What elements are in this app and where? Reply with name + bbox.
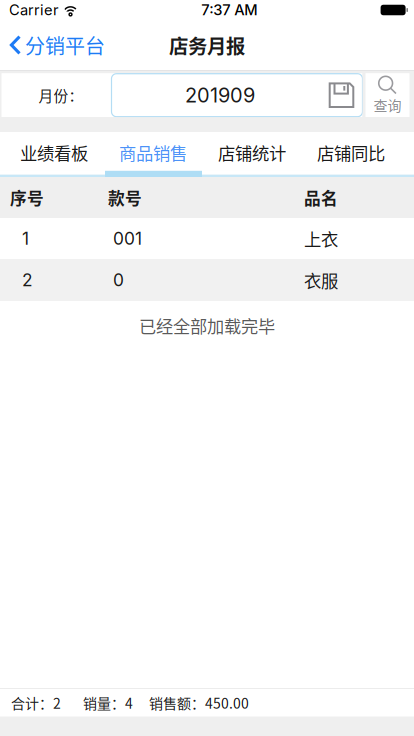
staticText: 7:37 AM <box>201 1 257 19</box>
button[interactable]: 商品销售 <box>103 132 202 171</box>
button[interactable]: Save <box>328 74 362 116</box>
staticText: 销量：4 <box>83 693 133 713</box>
staticText: 合计：2 <box>11 693 61 713</box>
staticText: 销售额：450.00 <box>149 693 249 713</box>
staticText: Carrier <box>9 1 59 19</box>
button[interactable]: 分销平台 <box>0 23 105 66</box>
staticText: 序号 <box>10 185 44 209</box>
staticText: 品名 <box>304 185 338 209</box>
staticText: 0 <box>113 269 124 290</box>
staticText: 款号 <box>108 185 142 209</box>
staticText: 店铺统计 <box>218 140 286 165</box>
staticText: 店务月报 <box>169 31 245 59</box>
staticText: 1 <box>22 228 29 249</box>
button[interactable]: 2 <box>0 259 414 301</box>
button[interactable]: 1 <box>0 218 414 259</box>
staticText: 月份： <box>38 85 83 106</box>
staticText: 上衣 <box>304 226 338 251</box>
staticText: 商品销售 <box>119 140 187 165</box>
button[interactable]: 店铺同比 <box>301 132 400 171</box>
button[interactable]: 业绩看板 <box>4 132 103 171</box>
staticText: 2 <box>22 269 33 290</box>
staticText: 已经全部加载完毕 <box>139 313 275 338</box>
button[interactable]: 查询 <box>365 73 409 117</box>
staticText: 查询 <box>373 95 401 115</box>
staticText: 201909 <box>185 83 255 107</box>
staticText: 分销平台 <box>25 30 105 59</box>
button[interactable]: 店铺统计 <box>202 132 301 171</box>
staticText: 001 <box>113 228 142 249</box>
staticText: 业绩看板 <box>20 140 88 165</box>
staticText: 衣服 <box>304 267 338 293</box>
staticText: 店铺同比 <box>317 140 385 165</box>
